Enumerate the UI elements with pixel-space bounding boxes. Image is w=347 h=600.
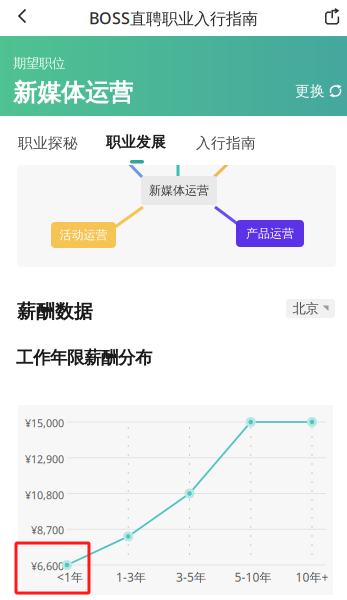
button[interactable]: 活动运营 — [51, 222, 116, 248]
staticText: ¥12,900 — [25, 452, 64, 466]
button[interactable]: 产品运营 — [236, 220, 304, 247]
staticText: 薪酬数据 — [17, 300, 93, 323]
staticText: 产品运营 — [246, 226, 294, 241]
staticText: 新媒体运营 — [13, 78, 133, 107]
staticText: ¥6,600 — [31, 559, 64, 573]
staticText: 5-10年 — [234, 569, 271, 585]
button[interactable]: Share — [304, 2, 346, 34]
staticText: 1-3年 — [116, 569, 146, 585]
staticText: 期望职位 — [13, 55, 65, 71]
staticText: 10年+ — [295, 569, 328, 585]
staticText: 入行指南 — [196, 134, 256, 152]
button[interactable]: 入行指南 — [196, 133, 276, 153]
button[interactable]: 北京 — [286, 299, 335, 318]
staticText: 新媒体运营 — [149, 183, 209, 198]
staticText: ¥10,800 — [25, 488, 64, 502]
staticText: 北京 — [292, 300, 318, 317]
staticText: ¥8,700 — [31, 523, 64, 537]
button[interactable]: Back — [2, 2, 44, 34]
staticText: 职业探秘 — [18, 134, 78, 152]
staticText: 3-5年 — [176, 569, 206, 585]
staticText: BOSS直聘职业入行指南 — [89, 7, 258, 29]
staticText: ¥15,000 — [25, 416, 64, 430]
button[interactable]: 职业发展 — [106, 133, 186, 163]
staticText: 职业发展 — [106, 133, 166, 151]
button[interactable]: 更换 — [295, 84, 343, 98]
staticText: 活动运营 — [59, 228, 107, 242]
button[interactable]: 职业探秘 — [18, 133, 98, 153]
staticText: <1年 — [57, 569, 83, 585]
staticText: 工作年限薪酬分布 — [16, 347, 152, 368]
staticText: 更换 — [295, 82, 325, 100]
